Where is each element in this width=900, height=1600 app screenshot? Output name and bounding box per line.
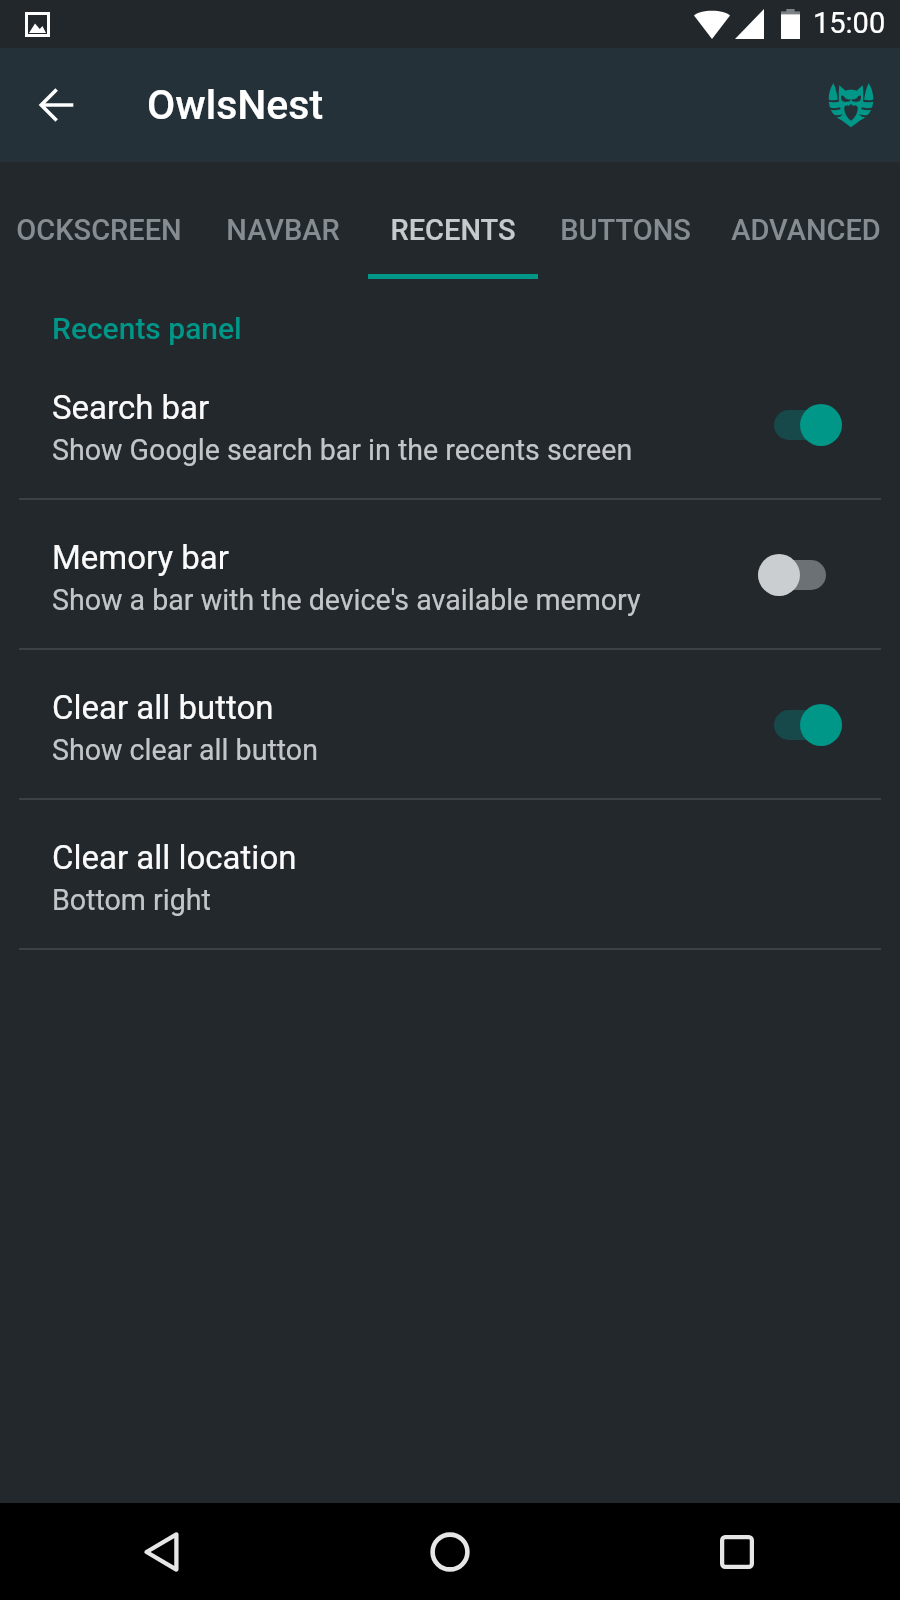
staticText: Recents panel [52, 311, 242, 346]
staticText: OCKSCREEN [16, 213, 182, 247]
button[interactable]: Back [28, 76, 86, 134]
staticText: Search bar [52, 388, 210, 427]
staticText: Clear all location [52, 838, 297, 877]
button[interactable]: Back [114, 1504, 210, 1600]
button[interactable]: ADVANCED [712, 162, 900, 284]
button[interactable]: Toggle, on [758, 395, 842, 455]
staticText: Memory bar [52, 538, 230, 577]
staticText: Show a bar with the device's available m… [52, 583, 641, 617]
button[interactable]: NAVBAR [198, 162, 368, 284]
staticText: Show Google search bar in the recents sc… [52, 433, 633, 467]
button[interactable]: BUTTONS [538, 162, 712, 284]
staticText: 15:00 [813, 6, 886, 40]
staticText: Show clear all button [52, 733, 318, 767]
button[interactable]: Memory bar [0, 500, 900, 650]
staticText: BUTTONS [560, 213, 691, 247]
button[interactable]: Clear all location [0, 800, 900, 950]
button[interactable]: Search bar [0, 350, 900, 500]
staticText: Clear all button [52, 688, 274, 727]
staticText: OwlsNest [147, 81, 324, 129]
button[interactable]: Recent apps [689, 1504, 785, 1600]
button[interactable]: OwlsNest logo [823, 77, 879, 133]
staticText: Bottom right [52, 883, 211, 917]
button[interactable]: OCKSCREEN [0, 162, 198, 284]
button[interactable]: Toggle, off [758, 545, 842, 605]
staticText: NAVBAR [226, 213, 340, 247]
button[interactable]: RECENTS [368, 162, 538, 284]
staticText: RECENTS [390, 213, 516, 247]
staticText: ADVANCED [731, 213, 881, 247]
button[interactable]: Clear all button [0, 650, 900, 800]
button[interactable]: Home [402, 1504, 498, 1600]
button[interactable]: Toggle, on [758, 695, 842, 755]
